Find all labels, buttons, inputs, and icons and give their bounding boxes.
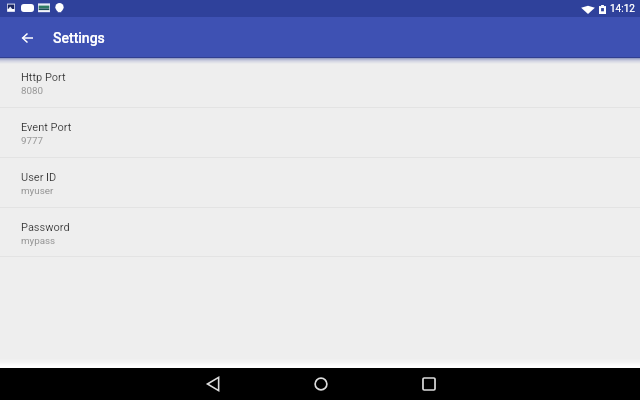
staticText: mypass xyxy=(21,235,56,246)
staticText: myuser xyxy=(21,185,54,196)
staticText: 8080 xyxy=(21,85,44,96)
button[interactable]: Recents xyxy=(408,368,449,400)
staticText: 9777 xyxy=(21,135,44,146)
button[interactable]: Password xyxy=(0,208,640,257)
staticText: Settings xyxy=(53,30,105,46)
button[interactable]: Event Port xyxy=(0,108,640,158)
button[interactable]: Home xyxy=(300,368,341,400)
staticText: Event Port xyxy=(21,121,72,134)
button[interactable]: Back xyxy=(192,368,233,400)
staticText: Password xyxy=(21,221,70,234)
button[interactable]: Http Port xyxy=(0,58,640,108)
button[interactable]: User ID xyxy=(0,158,640,208)
staticText: 14:12 xyxy=(610,3,635,15)
staticText: User ID xyxy=(21,171,57,184)
staticText: Http Port xyxy=(21,71,66,84)
button[interactable]: Back xyxy=(13,24,41,52)
